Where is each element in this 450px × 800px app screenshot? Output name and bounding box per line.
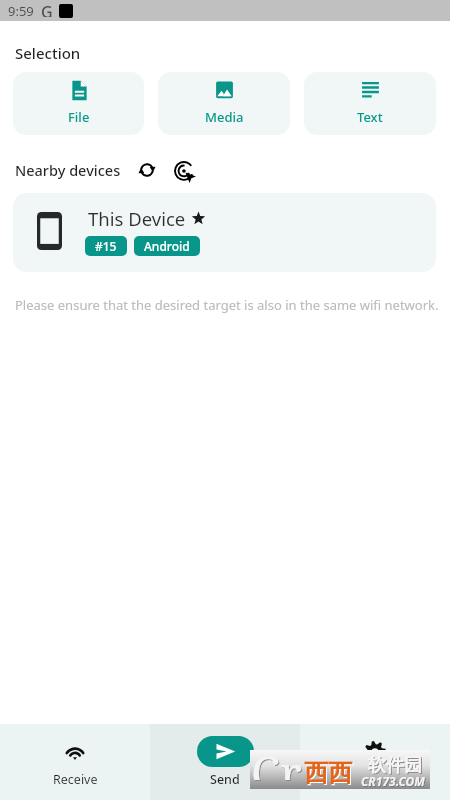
staticText: Nearby devices (15, 160, 121, 180)
staticText: This Device (88, 206, 186, 231)
staticText: Please ensure that the desired target is… (15, 296, 439, 314)
staticText: Send (210, 771, 240, 788)
staticText: G (41, 1, 53, 17)
staticText: Media (205, 108, 244, 126)
staticText: Android (144, 238, 190, 254)
button[interactable]: File (13, 72, 144, 135)
staticText: 西西 (305, 759, 353, 789)
staticText: 西西 (304, 758, 352, 788)
staticText: CR173.COM (362, 774, 426, 790)
button[interactable]: Send (150, 724, 300, 800)
staticText: Text (357, 108, 383, 126)
staticText: 9:59 (8, 2, 34, 20)
button[interactable]: Select target (173, 158, 197, 182)
button[interactable]: This Device (13, 193, 436, 272)
staticText: CR173.COM (361, 773, 425, 789)
staticText: Cr (251, 741, 302, 780)
button[interactable]: Refresh (135, 158, 159, 182)
staticText: 软件园 (368, 754, 422, 777)
staticText: Receive (53, 771, 98, 788)
button[interactable]: Receive (0, 724, 150, 800)
staticText: File (68, 108, 90, 126)
button[interactable]: Settings (300, 724, 450, 800)
staticText: Selection (15, 43, 81, 63)
button[interactable]: Text (304, 72, 436, 135)
staticText: #15 (95, 238, 117, 254)
staticText: Settings (351, 771, 399, 788)
staticText: 软件园 (369, 755, 423, 778)
staticText: Cr (252, 742, 303, 781)
button[interactable]: Media (158, 72, 290, 135)
